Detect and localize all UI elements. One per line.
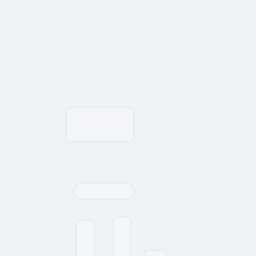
button[interactable]: Select range [74, 183, 134, 199]
